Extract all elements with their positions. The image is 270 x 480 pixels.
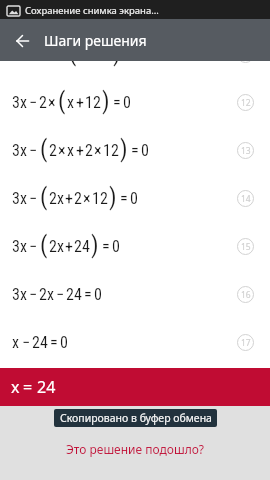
staticText: 17 [241,337,251,349]
staticText: ( [40,183,48,211]
staticText: x [67,93,75,112]
staticText: − [56,285,64,304]
staticText: 2x [49,237,64,256]
staticText: x [67,141,75,160]
staticText: + [76,141,84,160]
staticText: × [58,141,66,160]
staticText: × [83,189,91,208]
staticText: 2 [74,189,82,208]
staticText: + [65,189,73,208]
staticText: 24 [37,376,56,398]
staticText: 3x [12,237,27,256]
staticText: ( [58,87,66,115]
staticText: − [29,189,37,208]
staticText: x [12,333,20,352]
staticText: 12 [92,189,108,208]
staticText: 0 [130,189,138,208]
button[interactable]: 3x [0,78,270,126]
button[interactable]: Back [0,19,44,61]
staticText: − [29,237,37,256]
staticText: 0 [60,333,68,352]
staticText: 3x [12,189,27,208]
staticText: × [48,93,56,112]
button[interactable]: 3 [0,61,270,78]
staticText: = [113,93,121,112]
staticText: 14 [241,193,251,205]
staticText: 0 [141,141,149,160]
staticText: 0 [94,285,102,304]
staticText: 2 [49,141,57,160]
staticText: 12 [85,93,101,112]
staticText: 12 [103,141,119,160]
staticText: 2 [85,141,93,160]
staticText: 13 [241,145,251,157]
staticText: ) [120,135,128,163]
staticText: = [23,376,33,398]
staticText: Сохранение снимка экрана... [25,4,159,17]
staticText: 24 [32,333,48,352]
staticText: = [131,141,139,160]
staticText: − [22,333,30,352]
staticText: Шаги решения [44,31,147,50]
staticText: 3x [12,141,27,160]
staticText: ( [40,135,48,163]
staticText: = [120,189,128,208]
staticText: 0 [123,93,131,112]
staticText: + [76,93,84,112]
staticText: ) [113,61,121,67]
button[interactable]: Это решение подошло? [66,441,205,457]
staticText: ( [69,61,77,67]
button[interactable]: 3x [0,174,270,222]
staticText: 0 [112,237,120,256]
button[interactable]: 3x [0,270,270,318]
staticText: 2x [49,189,64,208]
staticText: 12 [241,97,251,109]
staticText: − [29,285,37,304]
staticText: 2 [39,93,47,112]
staticText: Скопировано в буфер обмена [60,411,212,425]
staticText: ( [40,231,48,259]
staticText: ) [91,231,99,259]
staticText: 16 [241,289,251,301]
button[interactable]: 3x [0,126,270,174]
staticText: ) [102,87,110,115]
staticText: − [29,141,37,160]
staticText: = [50,333,58,352]
staticText: × [94,141,102,160]
button[interactable]: 3x [0,222,270,270]
staticText: 15 [241,241,251,253]
staticText: 24 [74,237,90,256]
staticText: − [29,93,37,112]
button[interactable]: x [0,318,270,366]
staticText: ) [109,183,117,211]
staticText: = [84,285,92,304]
staticText: 3x [12,93,27,112]
staticText: 3x [12,285,27,304]
staticText: + [65,237,73,256]
staticText: x [11,376,20,398]
staticText: 24 [66,285,82,304]
staticText: = [102,237,110,256]
staticText: 2x [39,285,54,304]
